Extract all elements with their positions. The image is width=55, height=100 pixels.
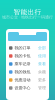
staticText: 更多 (38, 77, 46, 82)
button[interactable]: 设置中心 (6, 84, 49, 92)
staticText: 设置中心 (14, 85, 30, 90)
button[interactable]: 乘车记录 (6, 60, 49, 68)
staticText: 全部 (38, 45, 46, 50)
staticText: 我的订单 (14, 45, 30, 50)
button[interactable]: 我的订单 (6, 44, 49, 52)
staticText: 优惠活动 (14, 77, 30, 82)
staticText: 管理 (38, 85, 46, 90)
button[interactable]: 优惠活动 (6, 76, 49, 84)
button[interactable]: 我的钱包 (6, 68, 49, 76)
staticText: 乘车记录 (14, 61, 30, 66)
staticText: 使用 (38, 53, 46, 58)
staticText: 余额 (38, 69, 46, 74)
button[interactable]: 我的卡包 (6, 52, 49, 60)
staticText: 查看 (38, 61, 46, 66)
staticText: 智能出行 (13, 8, 41, 16)
staticText: 城市公交 · 地铁出行一码通行 (2, 14, 53, 20)
staticText: 我的钱包 (14, 69, 30, 74)
staticText: 我的卡包 (14, 53, 30, 58)
